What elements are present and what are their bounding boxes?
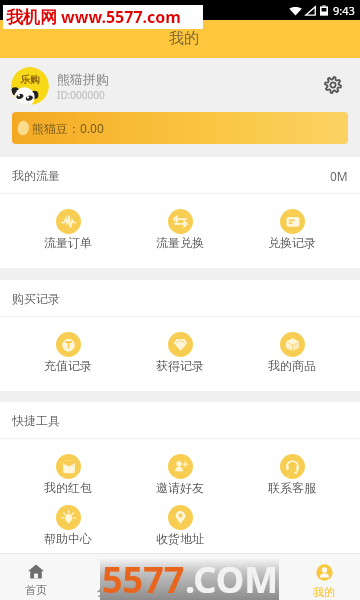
staticText: 流量兑换 — [156, 235, 204, 250]
staticText: 熊猫豆：0.00 — [32, 120, 104, 136]
staticText: 邀请好友 — [156, 480, 204, 495]
button[interactable]: 流量订单 — [12, 194, 124, 250]
staticText: 9:43 — [333, 3, 355, 18]
button[interactable]: 我的 — [288, 554, 360, 600]
staticText: 我的 — [313, 585, 335, 599]
button[interactable]: 收货地址 — [124, 490, 236, 546]
staticText: 熊猫拼购 — [57, 71, 109, 87]
staticText: 收货地址 — [156, 531, 204, 546]
button[interactable]: 拼团 — [144, 554, 216, 600]
staticText: 我机网 — [6, 7, 57, 28]
button[interactable]: 充值记录 — [12, 317, 124, 373]
staticText: 兑换记录 — [268, 235, 316, 250]
staticText: 获得记录 — [156, 358, 204, 373]
staticText: 联系客服 — [268, 480, 316, 495]
staticText: www.5577.com — [61, 6, 181, 28]
staticText: .COM — [185, 555, 279, 596]
staticText: 乐购 — [20, 73, 40, 86]
staticText: 分类 — [97, 585, 119, 599]
staticText: ID:000000 — [57, 88, 105, 102]
button[interactable]: 购物车 — [216, 554, 288, 600]
staticText: 购买记录 — [12, 291, 60, 306]
staticText: 我的 — [169, 29, 199, 48]
button[interactable]: 帮助中心 — [12, 490, 124, 546]
staticText: 首页 — [25, 583, 47, 597]
staticText: 我的红包 — [44, 480, 92, 495]
staticText: 0M — [330, 168, 348, 184]
button[interactable]: 流量兑换 — [124, 194, 236, 250]
button[interactable]: 联系客服 — [236, 439, 348, 495]
button[interactable]: 我的商品 — [236, 317, 348, 373]
staticText: 我的商品 — [268, 358, 316, 373]
staticText: 我的流量 — [12, 168, 60, 183]
button[interactable]: 获得记录 — [124, 317, 236, 373]
button[interactable]: Settings — [322, 74, 344, 96]
button[interactable]: 邀请好友 — [124, 439, 236, 495]
staticText: 拼团 — [169, 585, 191, 599]
button[interactable]: 乐购 — [11, 67, 49, 105]
button[interactable]: 我的红包 — [12, 439, 124, 495]
staticText: 帮助中心 — [44, 531, 92, 546]
staticText: 流量订单 — [44, 235, 92, 250]
staticText: 快捷工具 — [12, 413, 60, 428]
button[interactable]: 分类 — [72, 554, 144, 600]
button[interactable]: 兑换记录 — [236, 194, 348, 250]
button[interactable]: 首页 — [0, 554, 72, 600]
button[interactable]: 熊猫豆：0.00 — [12, 112, 348, 144]
staticText: 充值记录 — [44, 358, 92, 373]
staticText: 购物车 — [236, 585, 269, 599]
staticText: 5577 — [102, 555, 185, 596]
